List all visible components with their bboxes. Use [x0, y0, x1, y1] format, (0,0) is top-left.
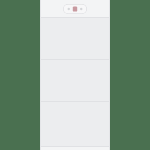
- button[interactable]: Search: [63, 4, 87, 14]
